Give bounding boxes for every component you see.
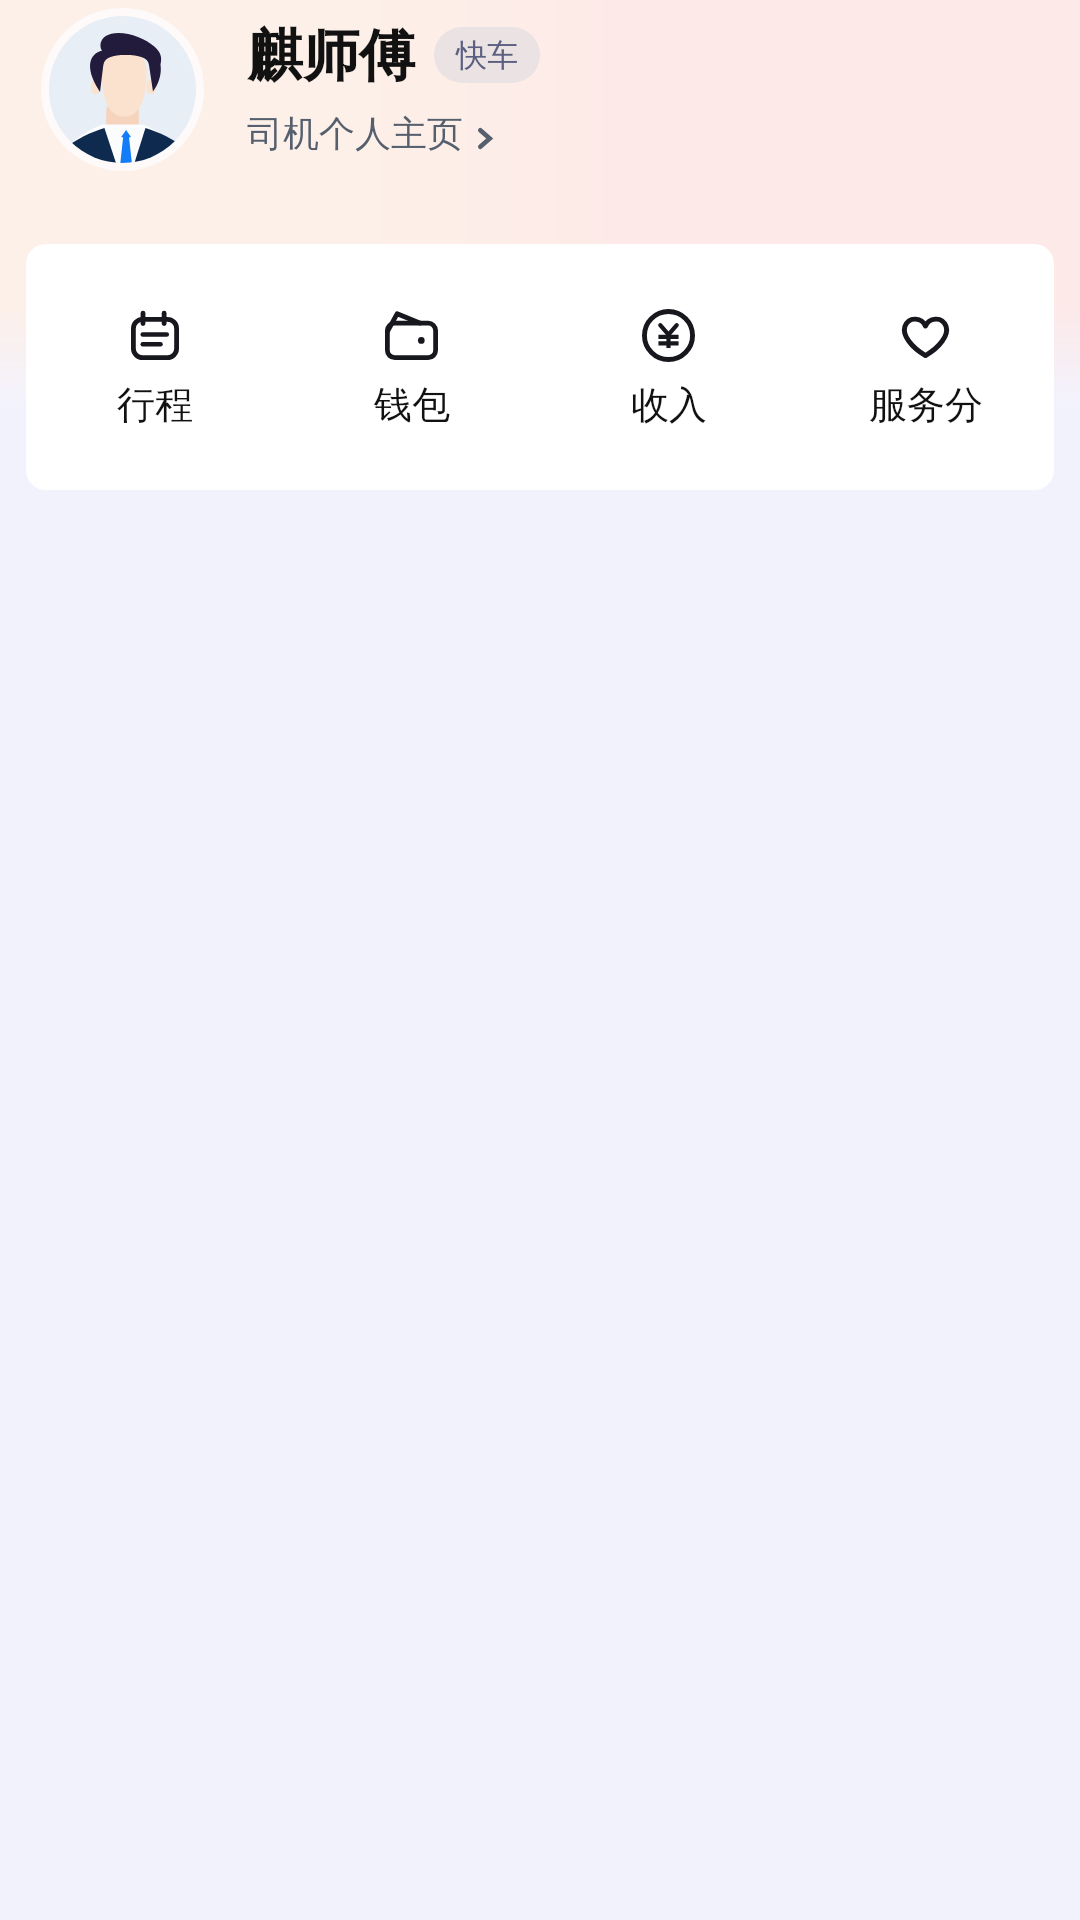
other: 行程 — [131, 312, 179, 360]
button[interactable]: 麒师傅 — [41, 8, 497, 171]
other: 钱包 — [385, 311, 438, 360]
staticText: 行程 — [117, 381, 193, 429]
staticText: 司机个人主页 — [247, 111, 463, 156]
staticText: 服务分 — [869, 381, 983, 429]
other: 服务分 — [902, 315, 949, 358]
staticText: 快车 — [456, 36, 518, 75]
button[interactable]: 钱包 — [283, 244, 540, 490]
button[interactable]: 服务分 — [797, 244, 1054, 490]
button[interactable]: 司机个人主页 — [247, 111, 492, 156]
button[interactable]: 收入 — [540, 244, 797, 490]
other: 收入 — [642, 309, 695, 362]
staticText: 钱包 — [374, 381, 450, 429]
staticText: 麒师傅 — [247, 21, 415, 92]
staticText: 收入 — [631, 381, 707, 429]
button[interactable]: 行程 — [26, 244, 283, 490]
